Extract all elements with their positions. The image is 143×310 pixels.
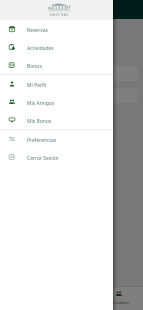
staticText: Preferencias [27, 137, 57, 144]
button[interactable] [5, 88, 138, 103]
staticText: GOLF RAZ [50, 12, 69, 17]
button[interactable]: Cerrar Sesión [0, 148, 113, 166]
staticText: Mis Amigos [27, 100, 55, 107]
staticText: Actividades [27, 45, 54, 52]
button[interactable]: Mi Perfil [0, 75, 113, 93]
button[interactable]: Bonos [0, 56, 113, 74]
button[interactable]: Actividades [0, 38, 113, 56]
staticText: Reservas [27, 27, 48, 34]
button[interactable]: Mis Bonos [0, 111, 113, 129]
staticText: Mi Perfil [27, 82, 47, 89]
staticText: Cerrar Sesión [27, 155, 59, 162]
staticText: Bonos [27, 63, 42, 70]
button[interactable] [5, 66, 138, 81]
button[interactable]: Mis Amigos [0, 93, 113, 111]
staticText: Mis Bonos [27, 118, 52, 125]
staticText: Actividades [110, 300, 129, 305]
button[interactable]: Reservas [0, 20, 113, 38]
button[interactable]: Actividades [95, 287, 143, 310]
button[interactable]: Preferencias [0, 130, 113, 148]
